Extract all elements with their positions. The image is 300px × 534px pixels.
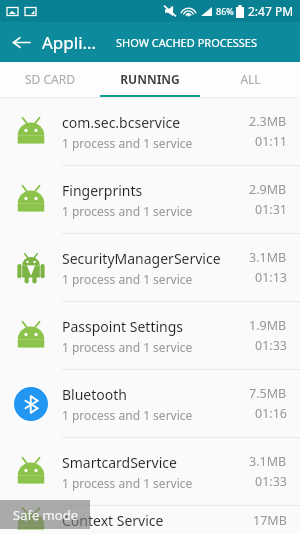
staticText: SHOW CACHED PROCESSES [116,35,258,50]
staticText: 01:11 [255,133,287,150]
staticText: 7.5MB [249,385,287,402]
button[interactable]: Passpoint Settings [0,302,300,369]
staticText: 1 process and 1 service [62,475,193,491]
staticText: 86% [216,5,234,17]
staticText: 2.3MB [249,113,287,130]
staticText: Bluetooth [62,385,127,404]
staticText: Safe mode [13,506,78,524]
staticText: Appli… [42,31,96,54]
staticText: Fingerprints [62,181,143,200]
staticText: 3.1MB [249,249,287,266]
button[interactable]: Safe mode [0,500,90,529]
staticText: 1 process and 1 service [62,135,193,151]
staticText: 1 process and 1 service [62,271,193,287]
staticText: 01:16 [255,405,287,422]
staticText: 1 process and 1 service [62,339,193,355]
staticText: SmartcardService [62,453,177,472]
button[interactable]: Back [0,22,42,62]
staticText: RUNNING [120,71,180,87]
button[interactable]: Fingerprints [0,166,300,233]
staticText: Passpoint Settings [62,317,184,336]
staticText: 1 process and 1 service [62,407,193,423]
button[interactable]: SD CARD [0,62,100,95]
button[interactable]: com.sec.bcservice [0,98,300,165]
staticText: 3.1MB [249,453,287,470]
staticText: SecurityManagerService [62,249,221,268]
button[interactable]: Context Service [0,506,300,534]
staticText: 1.9MB [249,317,287,334]
staticText: com.sec.bcservice [62,113,181,132]
button[interactable]: RUNNING [100,62,200,95]
staticText: 01:13 [255,269,287,286]
staticText: 1 process and 1 service [62,203,193,219]
staticText: Context Service [62,511,164,530]
button[interactable]: ALL [200,62,300,95]
staticText: 2:47 PM [248,3,294,19]
button[interactable]: SecurityManagerService [0,234,300,301]
button[interactable]: SHOW CACHED PROCESSES [112,22,262,62]
staticText: 17MB [253,512,287,529]
staticText: ALL [240,71,261,87]
staticText: SD CARD [25,71,75,87]
button[interactable]: SmartcardService [0,438,300,505]
staticText: 01:33 [255,473,287,490]
staticText: 01:31 [255,201,287,218]
staticText: 01:33 [255,337,287,354]
staticText: 2.9MB [249,181,287,198]
button[interactable]: Bluetooth [0,370,300,437]
